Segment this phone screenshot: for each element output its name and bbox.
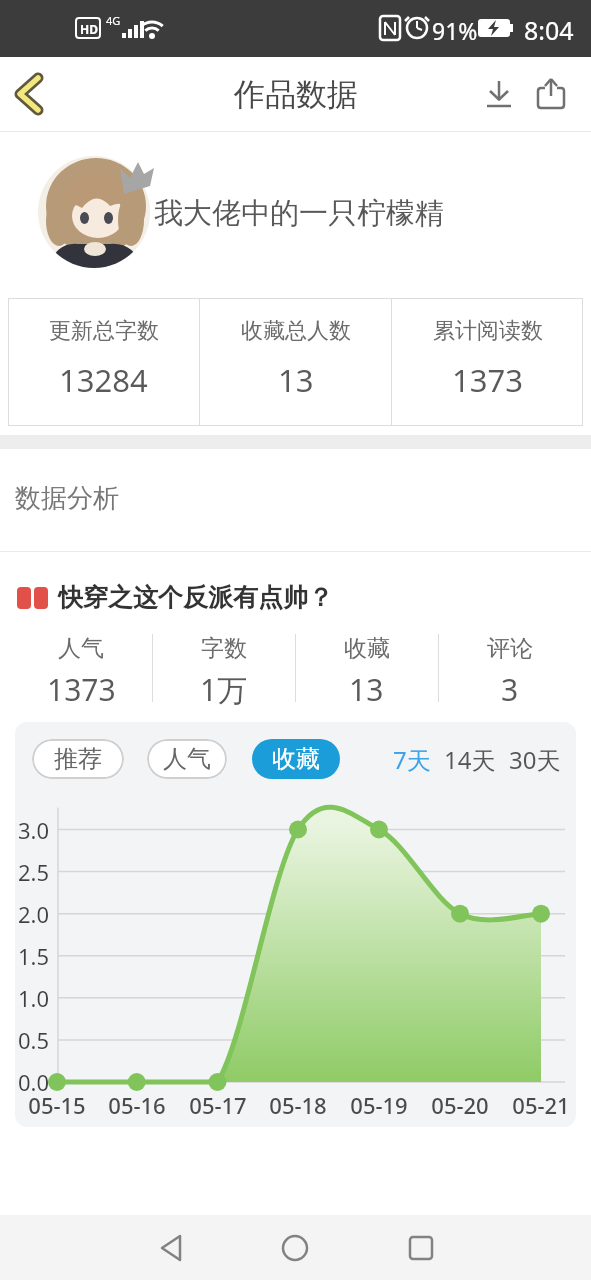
- staticText: 人气: [163, 744, 211, 774]
- button[interactable]: [393, 1220, 449, 1276]
- staticText: 我大佬中的一只柠檬精: [154, 195, 444, 232]
- button[interactable]: [0, 66, 56, 122]
- staticText: 13: [349, 669, 384, 710]
- staticText: 13284: [59, 359, 148, 401]
- button[interactable]: [529, 72, 573, 116]
- staticText: 0.5: [15, 1025, 49, 1055]
- button[interactable]: 人气: [10, 634, 152, 710]
- staticText: 05-21: [509, 1090, 573, 1120]
- staticText: 作品数据: [234, 75, 358, 114]
- button[interactable]: [143, 1220, 199, 1276]
- staticText: 8:04: [524, 13, 574, 47]
- staticText: 05-18: [266, 1090, 330, 1120]
- staticText: 3.0: [15, 815, 49, 845]
- staticText: 收藏: [344, 634, 390, 663]
- button[interactable]: 30天: [509, 743, 561, 776]
- staticText: 3: [501, 669, 519, 710]
- button[interactable]: 累计阅读数: [392, 298, 583, 401]
- staticText: 1.0: [15, 983, 49, 1013]
- staticText: 推荐: [54, 744, 102, 774]
- staticText: 累计阅读数: [433, 317, 543, 345]
- staticText: 05-17: [186, 1090, 250, 1120]
- button[interactable]: 字数: [152, 634, 295, 710]
- button[interactable]: 人气: [147, 739, 227, 779]
- button[interactable]: 收藏: [295, 634, 438, 710]
- staticText: 05-15: [25, 1090, 89, 1120]
- staticText: 2.0: [15, 899, 49, 929]
- staticText: 更新总字数: [49, 317, 159, 345]
- button[interactable]: 收藏: [252, 739, 340, 779]
- staticText: 91%: [432, 15, 478, 46]
- staticText: 05-16: [105, 1090, 169, 1120]
- staticText: 13: [278, 359, 314, 401]
- staticText: 人气: [58, 634, 104, 663]
- staticText: 05-20: [428, 1090, 492, 1120]
- staticText: 2.5: [15, 857, 49, 887]
- staticText: 1.5: [15, 941, 49, 971]
- staticText: 1373: [452, 359, 523, 401]
- button[interactable]: 7天: [393, 743, 431, 776]
- staticText: 1373: [47, 669, 116, 710]
- button[interactable]: 更新总字数: [8, 298, 199, 401]
- staticText: 快穿之这个反派有点帅？: [58, 582, 333, 613]
- staticText: HD: [80, 21, 98, 37]
- staticText: 数据分析: [15, 482, 119, 515]
- staticText: 1万: [200, 669, 248, 710]
- staticText: 评论: [487, 634, 533, 663]
- staticText: 0.0: [15, 1067, 49, 1097]
- button[interactable]: [477, 72, 521, 116]
- button[interactable]: [267, 1220, 323, 1276]
- button[interactable]: 评论: [438, 634, 581, 710]
- button[interactable]: 收藏总人数: [200, 298, 391, 401]
- staticText: 4G: [106, 13, 121, 28]
- staticText: 收藏: [272, 744, 320, 774]
- button[interactable]: 14天: [444, 743, 496, 776]
- staticText: 05-19: [347, 1090, 411, 1120]
- staticText: 字数: [201, 634, 247, 663]
- staticText: 收藏总人数: [241, 317, 351, 345]
- button[interactable]: 推荐: [32, 739, 124, 779]
